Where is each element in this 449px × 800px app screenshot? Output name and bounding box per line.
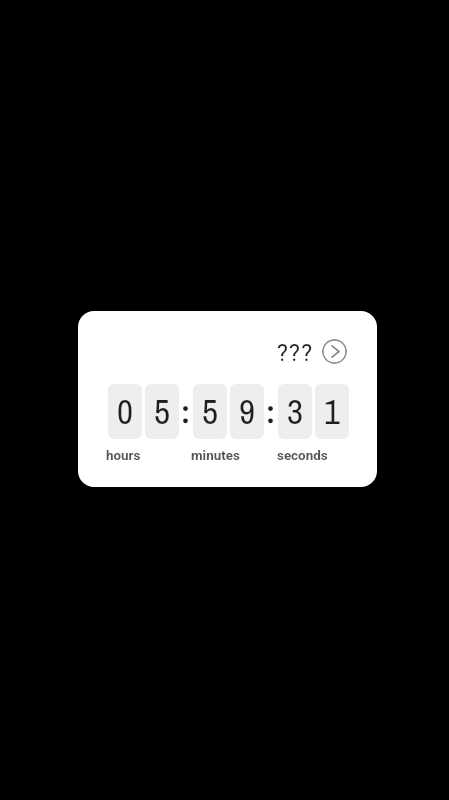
staticText: 0 bbox=[117, 388, 133, 435]
staticText: 9 bbox=[239, 388, 255, 435]
staticText: seconds bbox=[277, 448, 328, 464]
staticText: 5 bbox=[154, 388, 170, 435]
staticText: ??? bbox=[277, 340, 314, 367]
staticText: hours bbox=[106, 448, 141, 464]
button[interactable]: Next bbox=[322, 339, 347, 364]
staticText: minutes bbox=[191, 448, 240, 464]
staticText: 1 bbox=[324, 388, 340, 435]
staticText: 3 bbox=[287, 388, 303, 435]
staticText: 5 bbox=[202, 388, 218, 435]
